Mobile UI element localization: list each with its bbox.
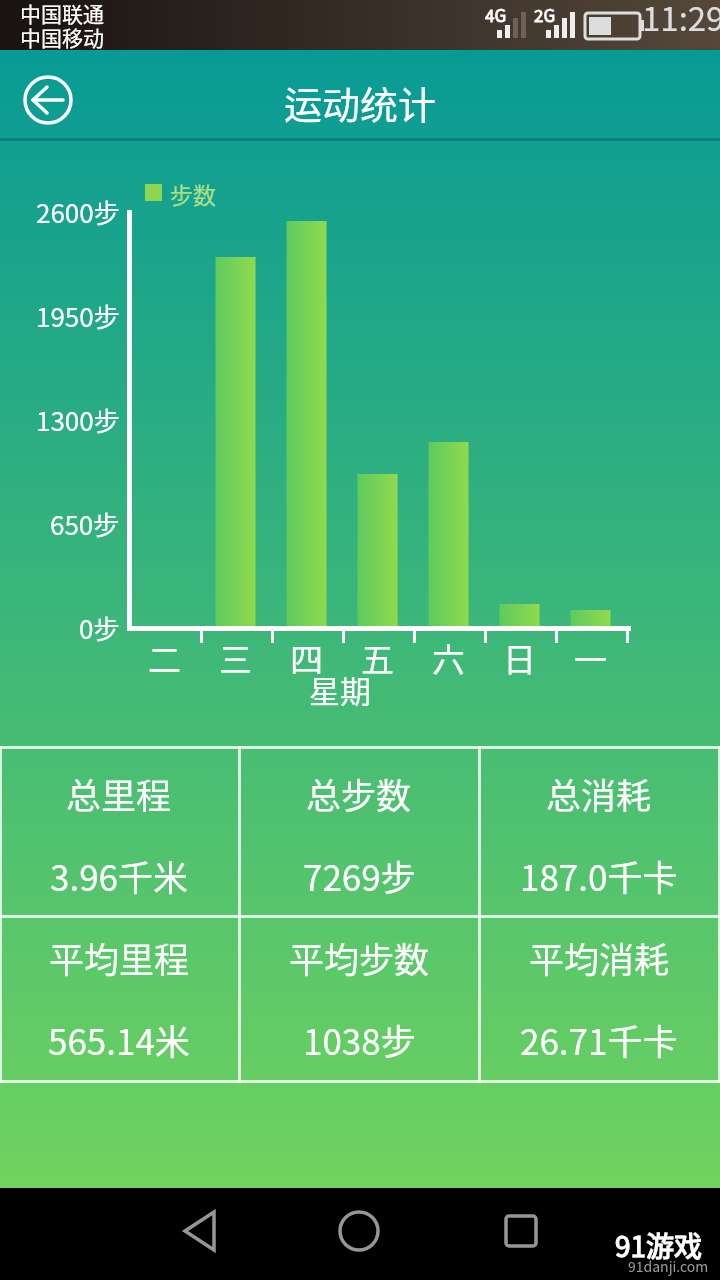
staticText: 步数 [170, 177, 216, 210]
staticText: 2600步 [36, 193, 120, 231]
button[interactable] [481, 1188, 561, 1268]
staticText: 日 [503, 634, 536, 682]
staticText: 2G [534, 2, 556, 27]
staticText: 187.0千卡 [520, 850, 678, 901]
staticText: 7269步 [303, 850, 416, 901]
staticText: 91danji.com [628, 1256, 709, 1276]
staticText: 650步 [50, 505, 120, 543]
staticText: 1300步 [36, 401, 120, 439]
staticText: 星期 [309, 667, 371, 712]
staticText: 总里程 [66, 768, 172, 819]
staticText: 4G [485, 2, 507, 27]
staticText: 三 [219, 634, 252, 682]
staticText: 3.96千米 [50, 850, 189, 901]
staticText: 总消耗 [546, 768, 652, 819]
staticText: 平均消耗 [529, 932, 670, 983]
staticText: 1038步 [303, 1014, 416, 1065]
staticText: 运动统计 [284, 75, 437, 130]
staticText: 平均里程 [49, 932, 190, 983]
staticText: 26.71千卡 [520, 1014, 678, 1065]
staticText: 0步 [79, 609, 120, 647]
staticText: 二 [148, 634, 181, 682]
staticText: 一 [574, 634, 607, 682]
staticText: 五 [361, 634, 394, 682]
staticText: 1950步 [36, 297, 120, 335]
staticText: 中国移动 [20, 22, 104, 52]
staticText: 六 [432, 634, 465, 682]
staticText: 91游戏 [615, 1225, 703, 1266]
button[interactable] [0, 749, 238, 915]
button[interactable] [480, 749, 718, 915]
staticText: 中国联通 [20, 0, 104, 28]
staticText: 565.14米 [48, 1014, 190, 1065]
staticText: 11:29 [642, 0, 720, 41]
button[interactable] [16, 68, 80, 132]
staticText: 四 [290, 634, 323, 682]
button[interactable] [319, 1188, 399, 1268]
staticText: 总步数 [306, 768, 412, 819]
staticText: 平均步数 [289, 932, 430, 983]
button[interactable] [160, 1188, 240, 1268]
button[interactable] [240, 749, 478, 915]
